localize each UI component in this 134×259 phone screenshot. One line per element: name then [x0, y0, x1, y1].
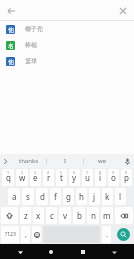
staticText: 9	[112, 170, 115, 175]
button[interactable]: c	[46, 207, 57, 224]
staticText: 他	[8, 26, 14, 34]
staticText: thanks	[19, 157, 39, 165]
staticText: x	[36, 210, 41, 221]
button[interactable]: .	[102, 226, 111, 243]
button[interactable]: Home	[45, 246, 57, 258]
staticText: l	[119, 191, 122, 202]
staticText: 6	[73, 170, 76, 175]
staticText: 名	[8, 42, 14, 50]
button[interactable]: More suggestions	[0, 154, 11, 168]
staticText: 0	[125, 170, 128, 175]
staticText: we	[98, 157, 107, 165]
button[interactable]: v	[59, 207, 71, 224]
staticText: 2	[21, 170, 24, 175]
staticText: 1	[7, 170, 10, 175]
button[interactable]: b	[73, 207, 85, 224]
button[interactable]: f	[50, 188, 61, 205]
staticText: ,	[25, 230, 27, 240]
staticText: c	[50, 210, 54, 221]
button[interactable]: u	[82, 169, 93, 186]
button[interactable]: p	[121, 169, 132, 186]
button[interactable]: Back	[2, 2, 19, 19]
staticText: .	[106, 230, 108, 240]
button[interactable]: x	[33, 207, 44, 224]
staticText: ?123	[5, 231, 16, 238]
button[interactable]: m	[101, 207, 113, 224]
button[interactable]: 他	[0, 53, 134, 69]
staticText: i	[99, 172, 102, 183]
staticText: 7	[86, 170, 89, 175]
button[interactable]: I	[47, 154, 83, 168]
button[interactable]: i	[95, 169, 106, 186]
button[interactable]: Shift	[1, 207, 18, 224]
button[interactable]: Backspace	[115, 207, 133, 224]
button[interactable]: ,	[21, 226, 30, 243]
staticText: d	[40, 191, 45, 202]
button[interactable]: t	[56, 169, 67, 186]
staticText: 篮球	[25, 57, 37, 65]
staticText: m	[103, 210, 111, 221]
button[interactable]: e	[30, 169, 41, 186]
staticText: h	[79, 191, 84, 202]
button[interactable]: k	[102, 188, 113, 205]
staticText: v	[63, 210, 68, 221]
staticText: a	[12, 191, 17, 202]
staticText: u	[85, 172, 90, 183]
staticText: 棒槌	[25, 41, 37, 49]
staticText: t	[60, 172, 63, 183]
staticText: w	[19, 172, 26, 183]
staticText: I	[64, 157, 67, 165]
button[interactable]: j	[89, 188, 100, 205]
staticText: z	[24, 210, 28, 221]
staticText: 8	[99, 170, 102, 175]
staticText: r	[47, 172, 51, 183]
staticText: k	[105, 191, 110, 202]
staticText: s	[26, 191, 30, 202]
button[interactable]: we	[84, 154, 120, 168]
button[interactable]: Back	[14, 246, 26, 258]
button[interactable]: Recents	[77, 246, 89, 258]
staticText: q	[6, 172, 11, 183]
button[interactable]: Search	[117, 228, 130, 241]
button[interactable]: ?123	[1, 226, 19, 243]
button[interactable]: Emoji	[32, 226, 41, 243]
staticText: b	[77, 210, 82, 221]
staticText: n	[91, 210, 96, 221]
button[interactable]: 他	[0, 21, 134, 37]
staticText: e	[33, 172, 38, 183]
staticText: 4	[47, 170, 50, 175]
staticText: g	[66, 191, 71, 202]
button[interactable]: o	[108, 169, 119, 186]
button[interactable]: r	[43, 169, 54, 186]
button[interactable]: Hide keyboard	[108, 246, 120, 258]
button[interactable]: y	[69, 169, 80, 186]
staticText: 椰子壳	[25, 25, 43, 33]
staticText: 5	[60, 170, 63, 175]
button[interactable]: thanks	[11, 154, 46, 168]
staticText: 他	[8, 58, 14, 66]
button[interactable]: q	[2, 169, 14, 186]
button[interactable]: Voice input	[120, 154, 134, 168]
button[interactable]: s	[22, 188, 34, 205]
staticText: y	[72, 172, 77, 183]
button[interactable]: g	[63, 188, 74, 205]
button[interactable]: d	[36, 188, 48, 205]
button[interactable]: 名	[0, 37, 134, 53]
button[interactable]: n	[87, 207, 99, 224]
button[interactable]: a	[8, 188, 20, 205]
staticText: o	[111, 172, 116, 183]
button[interactable]: l	[115, 188, 126, 205]
staticText: 3	[34, 170, 37, 175]
button[interactable]: h	[76, 188, 87, 205]
button[interactable]: w	[16, 169, 28, 186]
staticText: f	[54, 191, 57, 202]
button[interactable]: Clear	[115, 3, 131, 19]
button[interactable]: z	[20, 207, 31, 224]
staticText: p	[124, 172, 129, 183]
staticText: j	[93, 191, 96, 202]
